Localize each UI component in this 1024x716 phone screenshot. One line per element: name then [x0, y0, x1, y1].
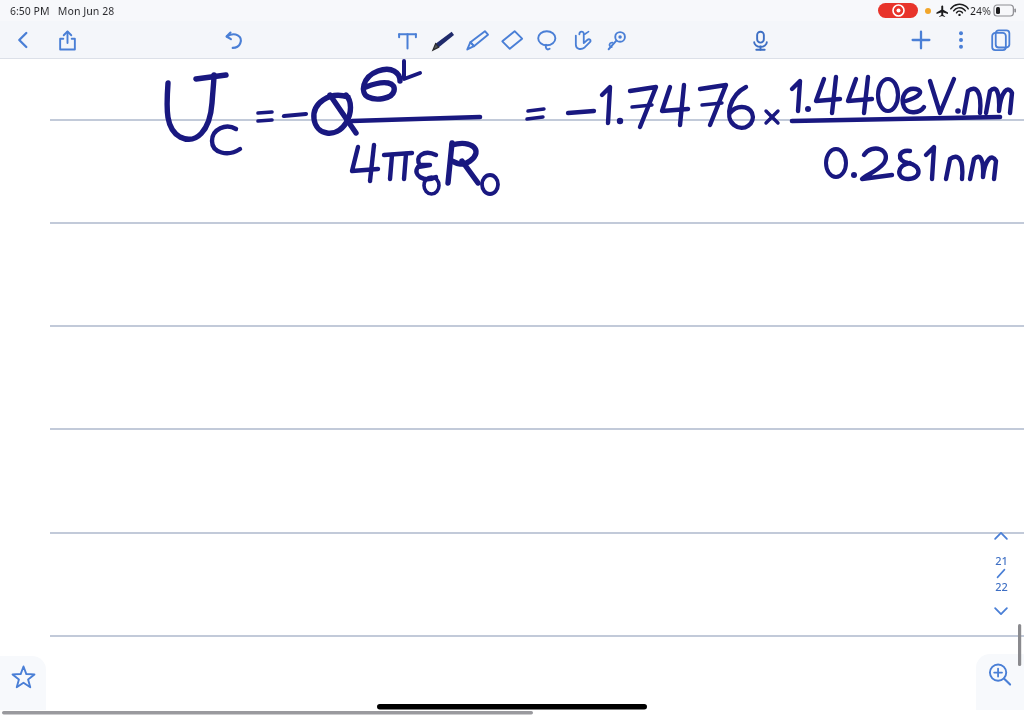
staticText: 24% [970, 4, 991, 18]
button[interactable]: Lasso [532, 25, 562, 55]
button[interactable]: Pages [986, 25, 1016, 55]
button[interactable]: Hand [567, 25, 597, 55]
staticText: 22 [995, 579, 1008, 594]
button[interactable]: Pen tool [427, 25, 457, 55]
button[interactable]: Share [52, 25, 82, 55]
button[interactable]: Zoom in [976, 654, 1024, 710]
button[interactable]: Favourites [0, 656, 46, 710]
button[interactable]: Back [8, 25, 38, 55]
button[interactable]: Record audio [745, 25, 775, 55]
button[interactable]: Next page [990, 600, 1012, 622]
button[interactable]: Laser pointer [602, 25, 632, 55]
button[interactable]: Text tool [392, 25, 422, 55]
button[interactable]: More options [946, 25, 976, 55]
button[interactable]: Previous page [990, 525, 1012, 547]
button[interactable]: Add page [906, 25, 936, 55]
staticText: 21 [995, 553, 1008, 568]
button[interactable]: Undo [219, 25, 249, 55]
button[interactable]: Eraser [497, 25, 527, 55]
staticText: 6:50 PM Mon Jun 28 [10, 4, 115, 18]
button[interactable]: Page 21 of 22 [994, 553, 1008, 594]
button[interactable]: Highlighter [462, 25, 492, 55]
